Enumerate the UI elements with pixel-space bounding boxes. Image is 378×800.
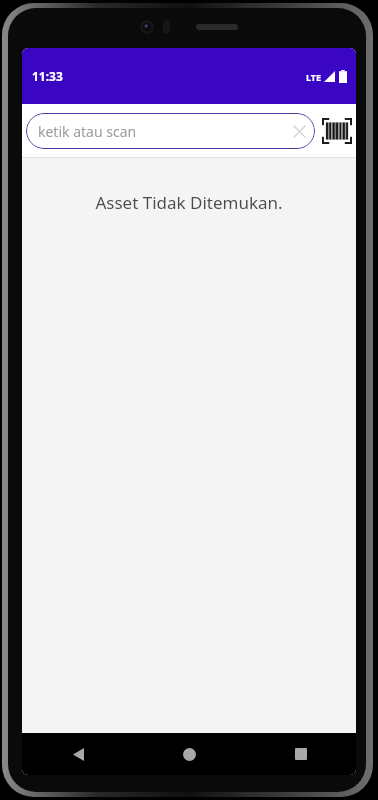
staticText: 11:33 bbox=[32, 68, 63, 84]
button[interactable]: ketik atau scan bbox=[26, 113, 315, 149]
button[interactable]: Scan barcode bbox=[320, 111, 354, 151]
staticText: ketik atau scan bbox=[38, 122, 289, 141]
button[interactable]: Recent apps bbox=[245, 733, 356, 775]
button[interactable]: Back bbox=[22, 733, 134, 775]
staticText: LTE bbox=[306, 71, 322, 83]
staticText: Asset Tidak Ditemukan. bbox=[22, 191, 356, 214]
button[interactable]: Home bbox=[134, 733, 245, 775]
button[interactable]: Clear text bbox=[289, 121, 309, 141]
